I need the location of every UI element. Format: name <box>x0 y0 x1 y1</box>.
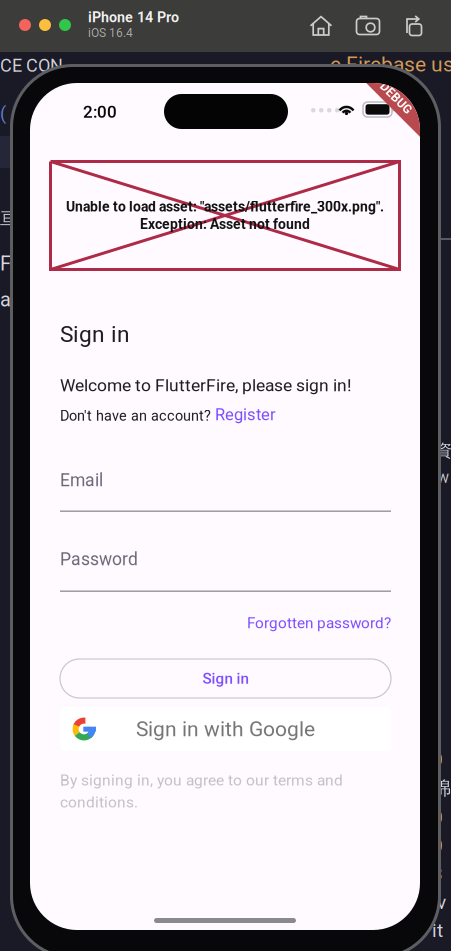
staticText: Register <box>215 405 276 424</box>
button[interactable]: Forgotten password? <box>247 614 391 632</box>
staticText: it <box>432 919 443 942</box>
staticText: Exception: Asset not found <box>140 216 310 232</box>
staticText: 0 <box>432 748 443 770</box>
staticText: .v <box>432 891 446 913</box>
staticText: e Firebase use <box>330 52 451 77</box>
button[interactable]: Sign in with Google <box>60 707 391 751</box>
staticText: 亘 <box>0 208 17 229</box>
staticText: ( <box>0 103 6 124</box>
staticText: 3 <box>432 863 443 885</box>
staticText: 0 <box>432 806 443 828</box>
staticText: Password <box>60 549 138 569</box>
staticText: Email <box>60 470 103 490</box>
staticText: Don't have an account? <box>60 407 215 424</box>
staticText: Sign in <box>202 670 248 687</box>
staticText: a <box>0 288 11 311</box>
button[interactable]: Register <box>215 405 276 424</box>
staticText: By signing in, you agree to our terms an… <box>60 771 343 789</box>
staticText: F <box>0 252 11 275</box>
staticText: iOS 16.4 <box>88 26 133 40</box>
staticText: 0 <box>432 834 443 857</box>
staticText: w <box>437 468 449 487</box>
staticText: Unable to load asset: "assets/flutterfir… <box>66 199 384 215</box>
staticText: iPhone 14 Pro <box>88 9 179 26</box>
staticText: DEBUG <box>376 91 415 105</box>
staticText: 資 <box>435 440 451 461</box>
button[interactable]: Screenshot <box>355 14 381 38</box>
staticText: CE CON <box>0 55 63 76</box>
button[interactable]: Rotate <box>403 14 427 38</box>
staticText: Forgotten password? <box>247 614 391 632</box>
staticText: conditions. <box>60 793 138 811</box>
staticText: 2:00 <box>83 102 117 122</box>
staticText: Welcome to FlutterFire, please sign in! <box>60 375 351 395</box>
staticText: Sign in with Google <box>136 717 315 741</box>
button[interactable]: Home <box>309 14 333 38</box>
staticText: 綿 <box>432 776 451 800</box>
button[interactable]: Sign in <box>60 659 391 698</box>
staticText: Sign in <box>60 321 130 348</box>
